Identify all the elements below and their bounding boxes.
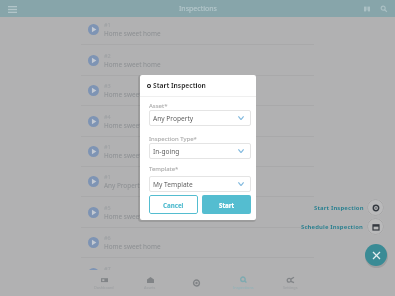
staticText: #6: [104, 234, 111, 241]
button[interactable]: Menu: [4, 1, 20, 17]
button[interactable]: Library: [361, 3, 372, 14]
button[interactable]: My Template: [149, 176, 251, 192]
staticText: Home sweet home: [104, 90, 161, 99]
button[interactable]: Cancel: [149, 195, 198, 214]
button[interactable]: Any Property: [149, 110, 251, 126]
staticText: Home sweet home: [104, 151, 161, 160]
staticText: Inspections: [233, 285, 254, 290]
staticText: Template*: [149, 165, 179, 173]
staticText: #7: [104, 265, 111, 272]
button[interactable]: Schedule Inspection: [367, 218, 384, 235]
staticText: Any Property: [104, 181, 143, 190]
staticText: #3: [104, 82, 111, 89]
staticText: In-going: [153, 147, 180, 156]
staticText: My Template: [153, 180, 193, 189]
button[interactable]: Start Inspection: [367, 199, 384, 216]
staticText: Start Inspection: [314, 204, 364, 212]
button[interactable]: #4: [81, 107, 314, 137]
staticText: Home sweet home: [104, 242, 161, 251]
button[interactable]: #3: [81, 76, 314, 106]
staticText: #2: [104, 52, 111, 59]
staticText: Dashboard: [94, 285, 114, 290]
button[interactable]: In-going: [149, 143, 251, 159]
staticText: Home sweet home: [104, 29, 161, 38]
staticText: Inspection Type*: [149, 135, 197, 143]
button[interactable]: #1: [81, 137, 314, 167]
button[interactable]: Start: [202, 195, 251, 214]
button[interactable]: #1: [81, 15, 314, 45]
button[interactable]: #6: [81, 228, 314, 258]
staticText: Schedule Inspection: [301, 223, 364, 231]
staticText: Any Property: [153, 114, 194, 123]
staticText: #1: [104, 173, 111, 180]
button[interactable]: Search: [378, 3, 389, 14]
staticText: #5: [104, 204, 111, 211]
button[interactable]: Settings: [267, 270, 314, 296]
staticText: Asset*: [149, 102, 168, 110]
button[interactable]: #2: [81, 46, 314, 76]
staticText: #1: [104, 21, 111, 28]
button[interactable]: #5: [81, 198, 314, 228]
button[interactable]: Dashboard: [81, 270, 127, 296]
staticText: Assets: [144, 285, 156, 290]
staticText: Start Inspection: [153, 81, 206, 90]
button[interactable]: Start Inspection: [147, 75, 256, 96]
staticText: Inspections: [179, 4, 217, 14]
button[interactable]: Start Inspection: [0, 199, 384, 216]
button[interactable]: Inspections: [220, 270, 267, 296]
staticText: #1: [104, 143, 111, 150]
staticText: #4: [104, 113, 111, 120]
button[interactable]: #1: [81, 167, 314, 197]
staticText: Settings: [283, 285, 298, 290]
staticText: Cancel: [163, 201, 184, 209]
button[interactable]: Schedule Inspection: [0, 218, 384, 235]
staticText: Home sweet home: [104, 60, 161, 69]
staticText: Home sweet home: [104, 273, 161, 282]
button[interactable]: Add: [173, 270, 220, 296]
button[interactable]: Assets: [127, 270, 173, 296]
staticText: Start: [219, 201, 235, 209]
button[interactable]: Close menu: [365, 244, 387, 266]
staticText: Home sweet home: [104, 121, 161, 130]
button[interactable]: #7: [81, 259, 314, 289]
staticText: Home sweet home: [104, 212, 161, 221]
